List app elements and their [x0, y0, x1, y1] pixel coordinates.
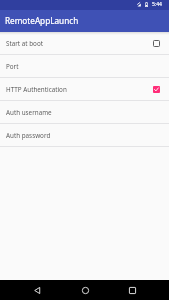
button[interactable]: Auth password [0, 124, 169, 147]
staticText: 5:44 [152, 1, 162, 8]
staticText: Auth password [6, 131, 51, 140]
button[interactable]: Home [75, 280, 95, 300]
staticText: HTTP Authentication [6, 85, 67, 94]
button[interactable]: Back [27, 280, 47, 300]
staticText: Start at boot [6, 39, 43, 48]
button[interactable]: Recents [122, 280, 142, 300]
staticText: Auth username [6, 108, 52, 117]
staticText: Port [6, 62, 19, 71]
button[interactable]: HTTP Authentication [0, 78, 169, 101]
button[interactable]: Start at boot [0, 32, 169, 55]
staticText: RemoteAppLaunch [5, 15, 79, 26]
button[interactable]: Port [0, 55, 169, 78]
button[interactable]: Auth username [0, 101, 169, 124]
